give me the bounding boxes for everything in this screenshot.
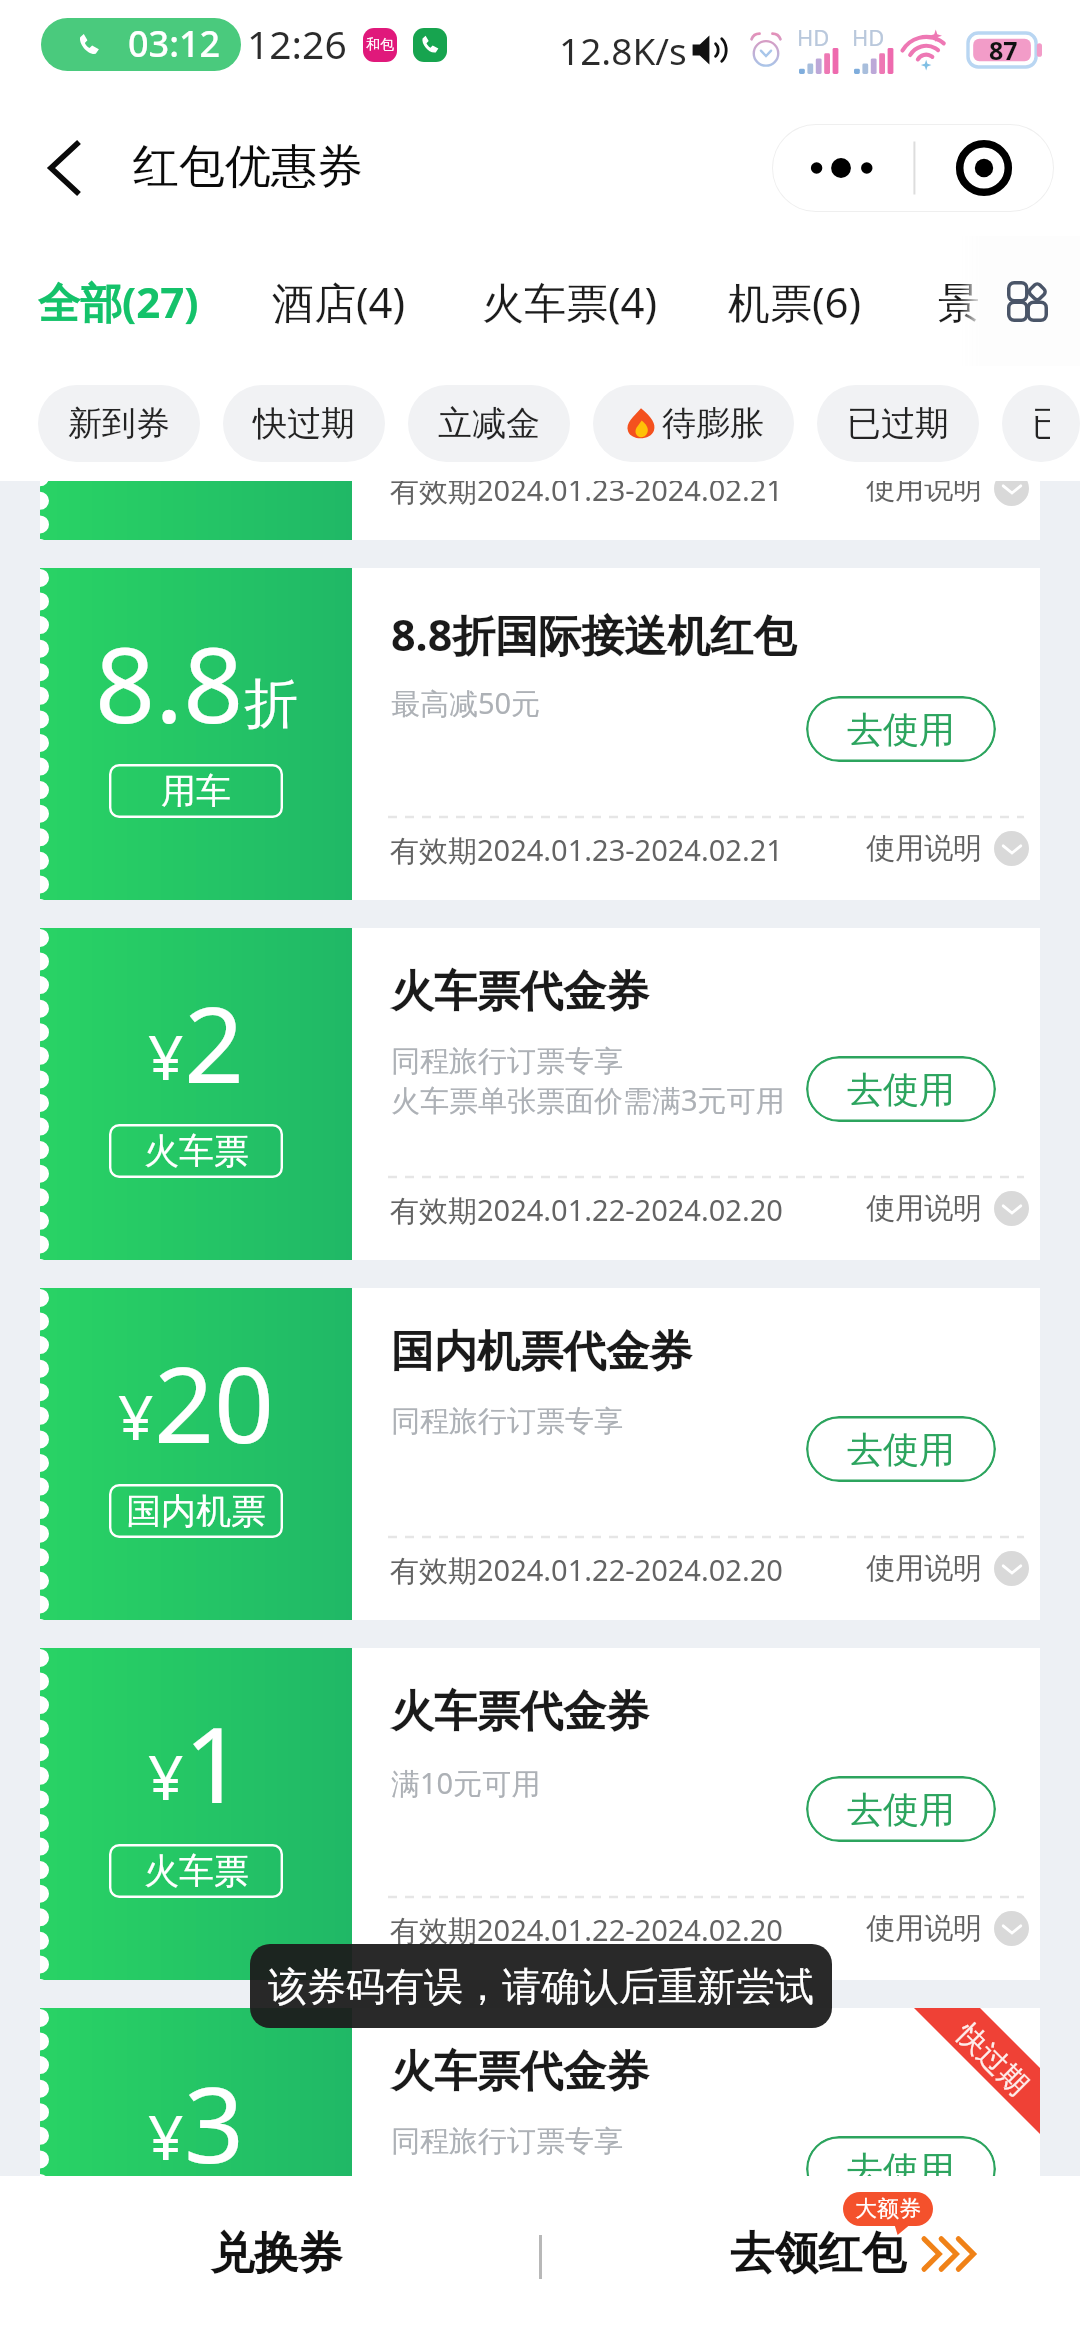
staticText: 有效期2024.01.22-2024.02.20 xyxy=(390,2270,783,2310)
button[interactable]: 去使用 xyxy=(806,1776,996,1842)
button[interactable]: 8.8 xyxy=(40,208,1040,540)
staticText: 使用说明 xyxy=(866,830,982,867)
button[interactable]: 待膨胀 xyxy=(593,385,794,462)
staticText: 有效期2024.01.22-2024.02.20 xyxy=(390,1910,783,1950)
staticText: 火车票 xyxy=(144,1129,249,1173)
staticText: 有效期2024.01.22-2024.02.20 xyxy=(390,1190,783,1230)
staticText: 8.8折国际接送机红包 xyxy=(391,245,797,304)
staticText: 国内机票代金券 xyxy=(391,1325,692,1379)
staticText: 用车 xyxy=(161,409,231,453)
staticText: 8.8折国际接送机红包 xyxy=(391,605,797,664)
staticText: 火车票代金券 xyxy=(391,965,649,1019)
staticText: 兑换券 xyxy=(210,2226,342,2281)
staticText: 新到券 xyxy=(68,402,170,445)
button[interactable]: 火车票(4) xyxy=(470,251,670,352)
button[interactable]: ¥ xyxy=(40,1288,1040,1620)
staticText: 有效期2024.01.22-2024.02.20 xyxy=(390,1550,783,1590)
staticText: 火车票代金券 xyxy=(391,2045,649,2099)
button[interactable]: More options xyxy=(772,124,1054,212)
button[interactable]: 去使用 xyxy=(806,696,996,762)
staticText: 使用说明 xyxy=(866,1550,982,1587)
staticText: 全部(27) xyxy=(38,273,199,330)
staticText: 同程旅行订票专享 xyxy=(391,1043,623,1080)
button[interactable]: 全部(27) xyxy=(26,251,226,352)
staticText: 和包 xyxy=(366,36,394,54)
staticText: 去使用 xyxy=(847,347,955,392)
staticText: ¥ xyxy=(148,1734,184,1818)
staticText: 使用说明 xyxy=(866,470,982,507)
button[interactable]: 去使用 xyxy=(806,1056,996,1122)
button[interactable]: 已过期 xyxy=(1002,385,1080,462)
button[interactable]: 兑换券 xyxy=(150,2212,402,2295)
staticText: 去使用 xyxy=(847,1067,955,1112)
staticText: 2 xyxy=(184,971,245,1114)
staticText: ¥ xyxy=(148,2094,184,2178)
staticText: 国内机票 xyxy=(126,1489,266,1533)
staticText: HD xyxy=(797,22,830,52)
button[interactable]: 酒店(4) xyxy=(260,251,460,352)
staticText: 去使用 xyxy=(847,1427,955,1472)
staticText: 该券码有误，请确认后重新尝试 xyxy=(268,1962,814,2011)
staticText: 87 xyxy=(989,33,1018,67)
staticText: 使用说明 xyxy=(866,2270,982,2307)
staticText: 有效期2024.01.23-2024.02.21 xyxy=(390,830,783,870)
button[interactable]: 去使用 xyxy=(806,336,996,402)
button[interactable]: 去使用 xyxy=(806,2136,996,2202)
staticText: 8.8 xyxy=(95,611,244,754)
staticText: 酒店(4) xyxy=(272,273,406,330)
button[interactable]: 使用说明 xyxy=(866,1190,1029,1227)
button[interactable]: 新到券 xyxy=(38,385,200,462)
staticText: 景点(5) xyxy=(938,273,1072,330)
button[interactable]: Back xyxy=(30,133,100,203)
staticText: 立减金 xyxy=(438,402,540,445)
button[interactable]: 使用说明 xyxy=(866,830,1029,867)
button[interactable]: 使用说明 xyxy=(866,2270,1029,2307)
staticText: 最高减50元 xyxy=(391,683,541,723)
staticText: 有效期2024.01.23-2024.02.21 xyxy=(390,470,783,510)
staticText: 12:26 xyxy=(247,17,347,70)
staticText: 快过期 xyxy=(253,402,355,445)
staticText: 火车票(4) xyxy=(482,273,658,330)
button[interactable]: ¥ xyxy=(40,928,1040,1260)
staticText: 同程旅行订票专享 xyxy=(391,1403,623,1440)
button[interactable]: 快过期 xyxy=(223,385,385,462)
staticText: 去使用 xyxy=(847,707,955,752)
staticText: 机票(6) xyxy=(728,273,862,330)
staticText: HD xyxy=(852,22,885,52)
button[interactable]: ¥ xyxy=(40,1648,1040,1980)
staticText: 火车票 xyxy=(144,1849,249,1893)
staticText: ¥ xyxy=(118,1374,154,1458)
staticText: 12.8K/s xyxy=(559,25,687,75)
button[interactable]: 8.8 xyxy=(40,568,1040,900)
staticText: 用车 xyxy=(161,769,231,813)
button[interactable]: 去领红包 xyxy=(700,2212,1014,2295)
button[interactable]: All categories xyxy=(987,261,1067,341)
button[interactable]: 去使用 xyxy=(806,1416,996,1482)
button[interactable]: 机票(6) xyxy=(716,251,916,352)
button[interactable]: 使用说明 xyxy=(866,470,1029,507)
staticText: 20 xyxy=(154,1331,275,1474)
staticText: 1 xyxy=(184,1691,245,1834)
button[interactable]: 立减金 xyxy=(408,385,570,462)
staticText: 已过期 xyxy=(1032,402,1050,445)
button[interactable]: 使用说明 xyxy=(866,1550,1029,1587)
staticText: 快过期 xyxy=(949,2016,1036,2103)
staticText: 已过期 xyxy=(847,402,949,445)
button[interactable]: 景点(5) xyxy=(926,251,1080,352)
staticText: 03:12 xyxy=(128,19,221,68)
staticText: 待膨胀 xyxy=(662,402,764,445)
staticText: 火车票代金券 xyxy=(391,1685,649,1739)
staticText: 8.8 xyxy=(95,251,244,394)
staticText: 使用说明 xyxy=(866,1190,982,1227)
button[interactable]: 已过期 xyxy=(817,385,979,462)
button[interactable]: 使用说明 xyxy=(866,1910,1029,1947)
staticText: 同程旅行订票专享 xyxy=(391,2123,623,2160)
staticText: 大额券 xyxy=(855,2195,921,2223)
staticText: 去领红包 xyxy=(730,2226,906,2281)
staticText: 折 xyxy=(244,670,298,738)
staticText: 红包优惠券 xyxy=(133,138,363,196)
staticText: ¥ xyxy=(148,1014,184,1098)
button[interactable]: ¥ xyxy=(40,2008,1040,2340)
staticText: 火车票 xyxy=(144,2209,249,2253)
staticText: 3 xyxy=(184,2051,245,2194)
